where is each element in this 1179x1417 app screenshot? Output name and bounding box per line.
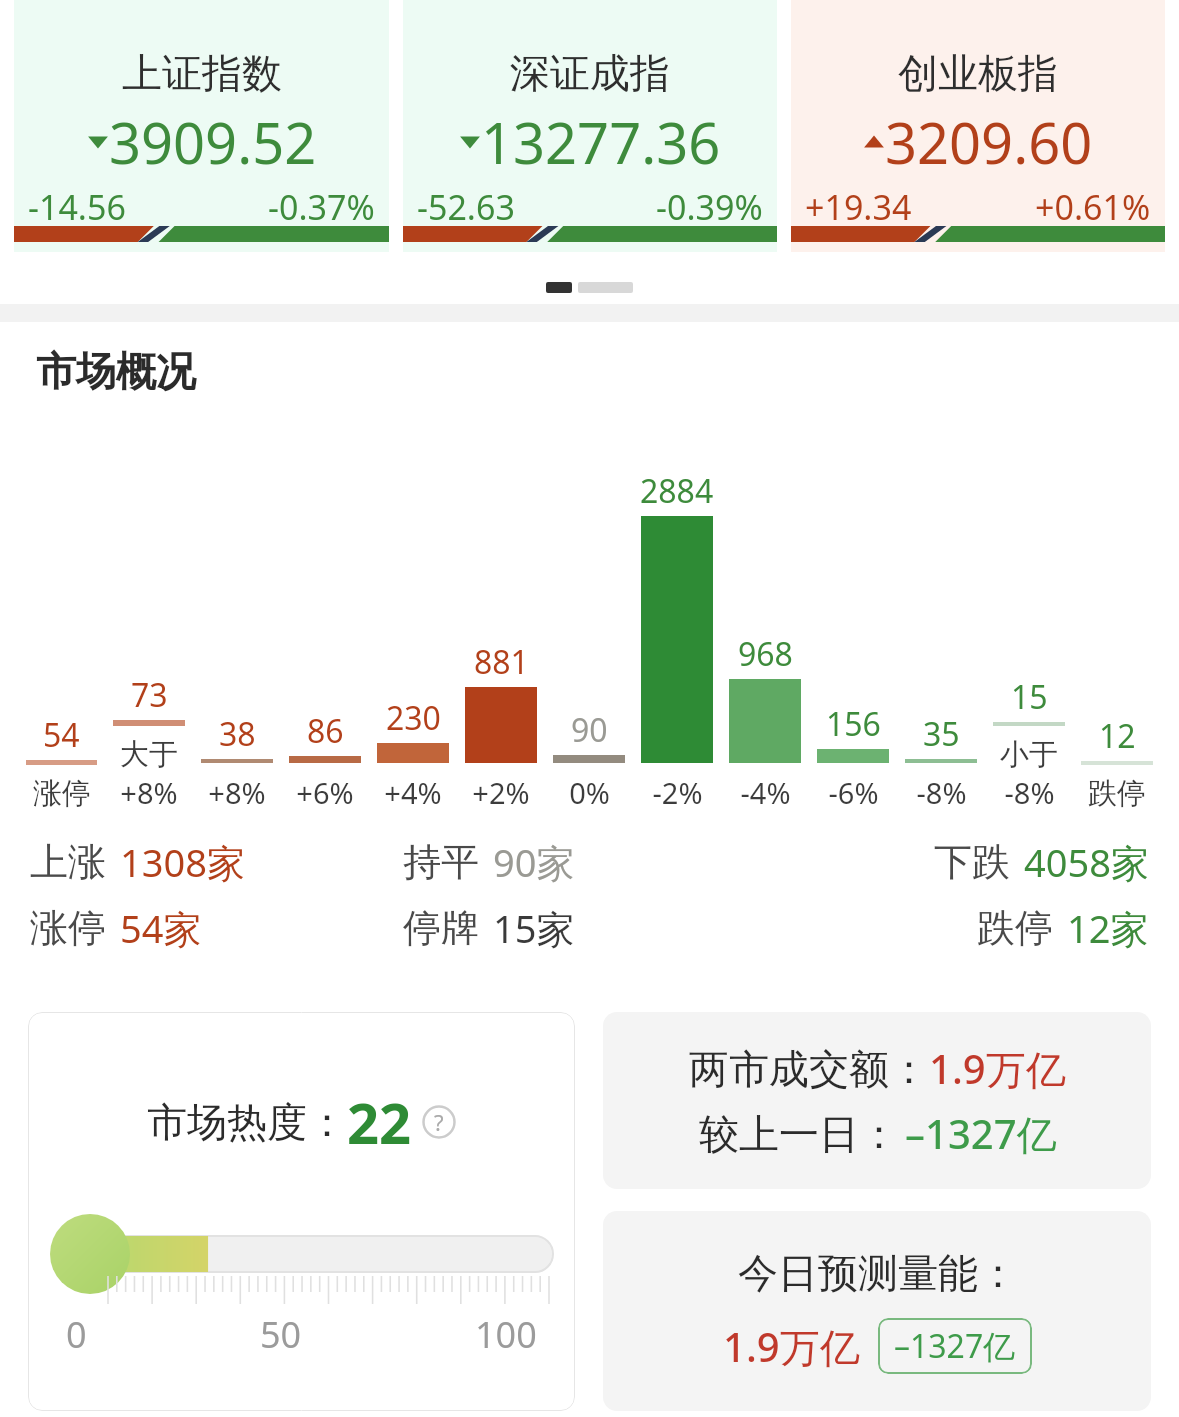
staticText: 968 (738, 632, 793, 676)
staticText: 较上一日： (699, 1109, 899, 1159)
staticText: 1.9万亿 (929, 1041, 1066, 1096)
staticText: -6% (828, 773, 879, 812)
staticText: 86 (307, 709, 344, 753)
staticText: 1.9万亿 (723, 1319, 860, 1374)
staticText: 1308家 (120, 836, 245, 888)
staticText: 下跌 (934, 838, 1010, 886)
staticText: 15 (1011, 675, 1048, 719)
staticText: -0.39% (656, 184, 763, 230)
staticText: 54家 (120, 902, 202, 954)
staticText: 市场热度： (147, 1097, 347, 1147)
staticText: 73 (131, 673, 168, 717)
button[interactable]: 市场热度： (28, 1012, 575, 1411)
button[interactable]: 两市成交额： (603, 1012, 1151, 1189)
staticText: 深证成指 (510, 48, 670, 98)
staticText: 35 (923, 712, 960, 756)
staticText: 12 (1099, 714, 1136, 758)
button[interactable]: 深证成指 (403, 0, 777, 252)
staticText: 创业板指 (898, 48, 1058, 98)
staticText: 4058家 (1024, 836, 1149, 888)
staticText: 上涨 (30, 838, 106, 886)
staticText: 90家 (493, 836, 575, 888)
staticText: –1327亿 (894, 1324, 1016, 1368)
staticText: +6% (296, 773, 354, 812)
staticText: 小于 (1000, 736, 1058, 773)
staticText: 38 (219, 712, 256, 756)
staticText: -8% (1004, 773, 1055, 812)
staticText: 3209.60 (885, 104, 1093, 180)
staticText: -52.63 (417, 184, 515, 230)
staticText: 50 (260, 1310, 302, 1359)
staticText: 大于 (120, 736, 178, 773)
staticText: +0.61% (1035, 184, 1151, 230)
staticText: +19.34 (805, 184, 912, 230)
button[interactable]: 上证指数 (14, 0, 389, 252)
staticText: +8% (120, 773, 178, 812)
staticText: 0 (66, 1310, 87, 1359)
staticText: 跌停 (1088, 775, 1146, 812)
staticText: 54 (43, 713, 80, 757)
staticText: 3909.52 (109, 104, 317, 180)
staticText: 0% (569, 773, 610, 812)
staticText: 230 (386, 696, 441, 740)
staticText: -8% (916, 773, 967, 812)
staticText: 90 (571, 708, 608, 752)
staticText: +2% (472, 773, 530, 812)
staticText: 12家 (1067, 902, 1149, 954)
staticText: 跌停 (977, 904, 1053, 952)
staticText: +8% (208, 773, 266, 812)
staticText: 100 (475, 1310, 537, 1359)
staticText: 市场概况 (36, 346, 196, 396)
staticText: -0.37% (268, 184, 375, 230)
staticText: 22 (347, 1084, 412, 1160)
staticText: 2884 (640, 469, 714, 513)
staticText: -14.56 (28, 184, 126, 230)
staticText: 停牌 (403, 904, 479, 952)
staticText: 持平 (403, 838, 479, 886)
staticText: 上证指数 (122, 48, 282, 98)
staticText: -4% (740, 773, 791, 812)
button[interactable]: 帮助 (422, 1105, 456, 1139)
staticText: 15家 (493, 902, 575, 954)
staticText: 涨停 (30, 904, 106, 952)
staticText: 两市成交额： (689, 1044, 929, 1094)
staticText: 涨停 (33, 775, 91, 812)
staticText: 156 (826, 702, 881, 746)
button[interactable]: 创业板指 (791, 0, 1165, 252)
staticText: 881 (474, 640, 529, 684)
staticText: –1327亿 (905, 1106, 1057, 1161)
staticText: -2% (652, 773, 703, 812)
button[interactable]: 今日预测量能： (603, 1211, 1151, 1411)
staticText: 今日预测量能： (738, 1248, 1018, 1298)
staticText: +4% (384, 773, 442, 812)
staticText: 13277.36 (481, 104, 721, 180)
staticText: ? (434, 1107, 444, 1137)
